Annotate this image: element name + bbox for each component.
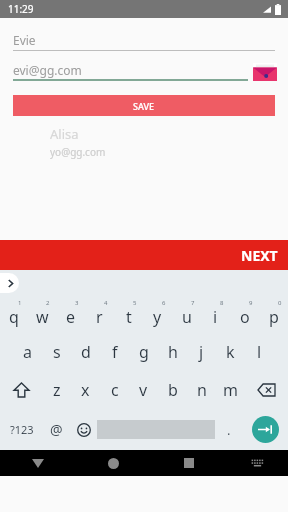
staticText: SAVE — [133, 100, 155, 112]
staticText: h — [168, 341, 178, 363]
button[interactable]: Expand suggestions — [0, 273, 19, 293]
staticText: 1 — [18, 299, 22, 307]
staticText: 9 — [249, 299, 253, 307]
button[interactable]: s — [42, 333, 71, 371]
staticText: o — [240, 306, 250, 328]
staticText: 8 — [220, 299, 224, 307]
button[interactable]: 8 — [201, 295, 230, 333]
staticText: . — [227, 421, 231, 439]
staticText: ?123 — [10, 422, 34, 437]
staticText: y — [153, 306, 162, 328]
staticText: x — [81, 379, 90, 401]
button[interactable]: 4 — [85, 295, 114, 333]
staticText: c — [111, 379, 119, 401]
button[interactable]: Next field — [242, 409, 288, 450]
button[interactable]: Emoji — [70, 409, 97, 450]
button[interactable]: @ — [43, 409, 70, 450]
staticText: 5 — [133, 299, 137, 307]
staticText: d — [81, 341, 91, 363]
button[interactable]: c — [100, 371, 129, 409]
staticText: @ — [50, 420, 63, 439]
button[interactable]: 2 — [28, 295, 56, 333]
staticText: 2 — [46, 299, 50, 307]
button[interactable]: Alisa — [50, 125, 288, 159]
button[interactable]: f — [100, 333, 129, 371]
button[interactable]: Back — [0, 450, 75, 476]
button[interactable]: 3 — [56, 295, 85, 333]
staticText: w — [36, 306, 49, 328]
staticText: 11:29 — [8, 2, 34, 16]
button[interactable]: d — [71, 333, 100, 371]
button[interactable]: 6 — [143, 295, 172, 333]
staticText: e — [66, 306, 76, 328]
staticText: s — [53, 341, 61, 363]
button[interactable]: 9 — [230, 295, 259, 333]
staticText: 3 — [75, 299, 79, 307]
staticText: NEXT — [241, 246, 278, 265]
button[interactable]: 5 — [114, 295, 143, 333]
button[interactable]: j — [187, 333, 216, 371]
button[interactable]: Email — [252, 61, 278, 83]
button[interactable]: x — [71, 371, 100, 409]
staticText: p — [269, 306, 279, 328]
button[interactable]: . — [215, 409, 242, 450]
staticText: j — [199, 341, 204, 363]
staticText: f — [112, 341, 118, 363]
button[interactable]: Recents — [151, 450, 227, 476]
staticText: n — [197, 379, 207, 401]
staticText: m — [223, 379, 238, 401]
button[interactable]: Home — [75, 450, 151, 476]
staticText: r — [96, 306, 103, 328]
staticText: u — [182, 306, 192, 328]
button[interactable]: NEXT — [0, 240, 288, 270]
staticText: 4 — [104, 299, 108, 307]
button[interactable]: a — [13, 333, 42, 371]
button[interactable]: v — [129, 371, 158, 409]
button[interactable]: h — [158, 333, 187, 371]
staticText: Evie — [13, 32, 36, 48]
button[interactable]: Switch keyboard — [227, 450, 288, 476]
staticText: 6 — [162, 299, 166, 307]
staticText: q — [9, 306, 19, 328]
staticText: l — [257, 341, 262, 363]
staticText: i — [213, 306, 218, 328]
button[interactable]: k — [216, 333, 245, 371]
staticText: t — [126, 306, 132, 328]
staticText: a — [23, 341, 32, 363]
button[interactable]: 7 — [172, 295, 201, 333]
staticText: k — [226, 341, 235, 363]
staticText: Alisa — [50, 125, 79, 143]
button[interactable]: l — [245, 333, 274, 371]
button[interactable]: ?123 — [0, 409, 43, 450]
staticText: evi@gg.com — [13, 62, 82, 78]
button[interactable]: 1 — [0, 295, 28, 333]
staticText: 7 — [191, 299, 195, 307]
staticText: v — [139, 379, 148, 401]
staticText: yo@gg.com — [50, 145, 106, 159]
button[interactable]: Shift — [0, 371, 42, 409]
button[interactable]: g — [129, 333, 158, 371]
staticText: z — [53, 379, 61, 401]
staticText: 0 — [278, 299, 282, 307]
button[interactable]: m — [216, 371, 245, 409]
button[interactable]: b — [158, 371, 187, 409]
button[interactable]: z — [42, 371, 71, 409]
button[interactable]: Backspace — [245, 371, 288, 409]
button[interactable]: n — [187, 371, 216, 409]
button[interactable]: SAVE — [13, 95, 275, 116]
staticText: b — [168, 379, 178, 401]
button[interactable]: 0 — [259, 295, 288, 333]
staticText: g — [139, 341, 149, 363]
